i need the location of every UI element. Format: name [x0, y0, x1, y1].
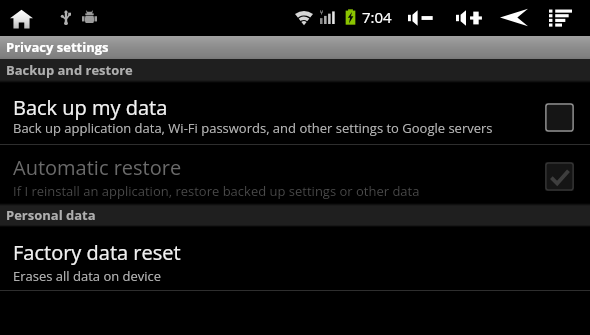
staticText: If I reinstall an application, restore b…	[13, 182, 420, 200]
button[interactable]: Checked	[545, 162, 574, 191]
staticText: Factory data reset	[13, 239, 181, 266]
button[interactable]: Automatic restore	[0, 145, 590, 203]
button[interactable]: Back	[500, 8, 528, 27]
button[interactable]: Factory data reset	[0, 227, 590, 290]
button[interactable]: Unchecked	[545, 103, 574, 132]
staticText: Back up my data	[13, 94, 168, 121]
staticText: Privacy settings	[6, 38, 109, 56]
other: USB connected	[61, 10, 71, 25]
staticText: Personal data	[6, 206, 96, 224]
staticText: 7:04	[362, 7, 392, 27]
staticText: Back up application data, Wi-Fi password…	[13, 119, 493, 137]
other: USB debugging enabled	[82, 10, 97, 23]
button[interactable]: Volume up	[456, 10, 483, 26]
staticText: Automatic restore	[13, 154, 182, 181]
button[interactable]: Recent apps	[549, 8, 572, 27]
button[interactable]: Home	[10, 9, 33, 29]
staticText: Erases all data on device	[13, 267, 162, 285]
button[interactable]: Back up my data	[0, 83, 590, 144]
staticText: Backup and restore	[6, 61, 133, 79]
button[interactable]: Volume down	[408, 10, 434, 26]
